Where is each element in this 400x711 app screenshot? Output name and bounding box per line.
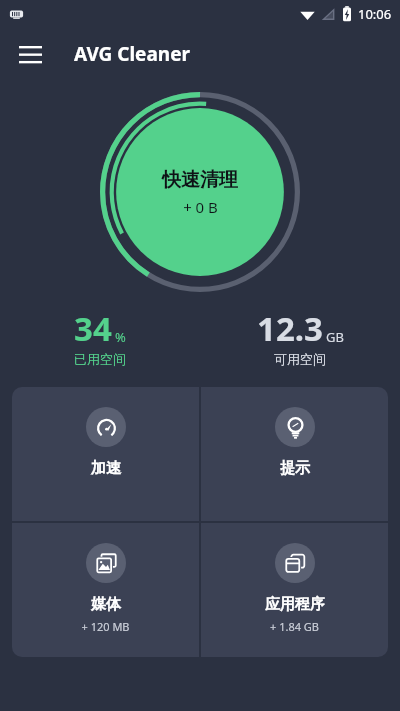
staticText: + 1.84 GB xyxy=(270,619,319,634)
staticText: 12.3 xyxy=(257,306,323,351)
button[interactable]: 快速清理 xyxy=(99,91,301,293)
staticText: + 120 MB xyxy=(81,619,130,634)
staticText: 快速清理 xyxy=(162,168,238,192)
button[interactable]: 加速 xyxy=(12,387,199,521)
button[interactable]: 34 xyxy=(0,306,200,367)
staticText: GB xyxy=(326,328,344,346)
button[interactable]: 媒体 xyxy=(12,523,199,657)
button[interactable]: Menu xyxy=(6,30,54,78)
staticText: 加速 xyxy=(91,459,121,478)
button[interactable]: 应用程序 xyxy=(201,523,388,657)
staticText: 可用空间 xyxy=(274,351,326,367)
staticText: % xyxy=(115,328,126,346)
button[interactable]: 提示 xyxy=(201,387,388,521)
staticText: 提示 xyxy=(280,459,310,478)
staticText: AVG Cleaner xyxy=(74,41,191,67)
staticText: 媒体 xyxy=(91,595,121,614)
staticText: 应用程序 xyxy=(265,595,325,614)
staticText: 已用空间 xyxy=(74,351,126,367)
staticText: 10:06 xyxy=(358,5,392,23)
button[interactable]: 12.3 xyxy=(200,306,400,367)
staticText: 34 xyxy=(74,306,112,351)
staticText: + 0 B xyxy=(183,197,218,217)
